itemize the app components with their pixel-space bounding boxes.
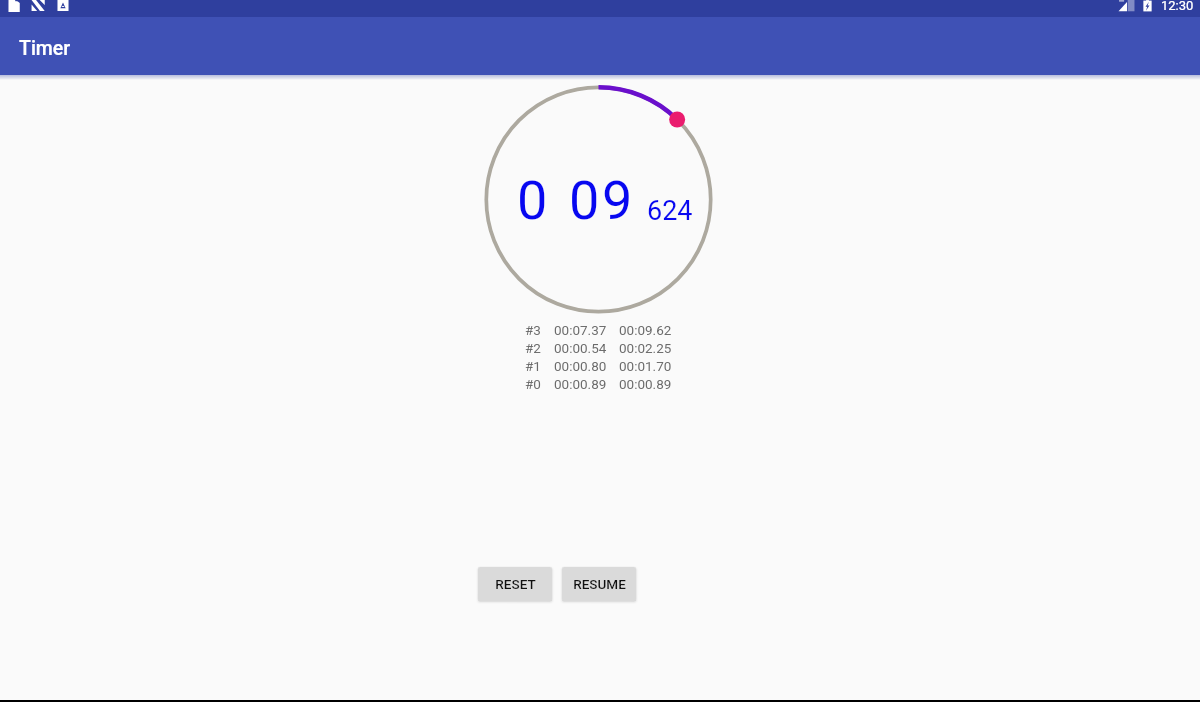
- staticText: #2: [525, 340, 554, 356]
- other: Note notification: [8, 0, 20, 12]
- other: App notification: [57, 0, 69, 11]
- button[interactable]: Stopwatch dial, 0 minutes 09.624 seconds: [485, 86, 712, 313]
- staticText: #1: [525, 358, 554, 374]
- staticText: 0: [517, 169, 548, 232]
- staticText: 00:00.80: [554, 358, 619, 374]
- button[interactable]: RESET: [478, 567, 552, 601]
- staticText: 09: [569, 169, 635, 232]
- other: Battery charging: [1143, 0, 1152, 12]
- staticText: 12:30: [1161, 0, 1194, 13]
- staticText: #3: [525, 322, 554, 338]
- staticText: RESUME: [573, 576, 626, 592]
- staticText: Timer: [19, 37, 71, 60]
- button[interactable]: #0: [525, 375, 672, 393]
- staticText: #0: [525, 376, 554, 392]
- button[interactable]: #3: [525, 321, 672, 339]
- staticText: 00:00.54: [554, 340, 619, 356]
- staticText: 00:07.37: [554, 322, 619, 338]
- button[interactable]: #1: [525, 357, 672, 375]
- staticText: 00:02.25: [619, 340, 672, 356]
- staticText: 624: [647, 195, 693, 227]
- button[interactable]: #2: [525, 339, 672, 357]
- other: Sync notification: [31, 0, 45, 11]
- other: Cellular signal, LTE: [1118, 0, 1135, 12]
- staticText: 00:01.70: [619, 358, 672, 374]
- staticText: 00:09.62: [619, 322, 672, 338]
- staticText: 00:00.89: [619, 376, 672, 392]
- staticText: RESET: [495, 576, 536, 592]
- staticText: 00:00.89: [554, 376, 619, 392]
- button[interactable]: RESUME: [562, 567, 636, 601]
